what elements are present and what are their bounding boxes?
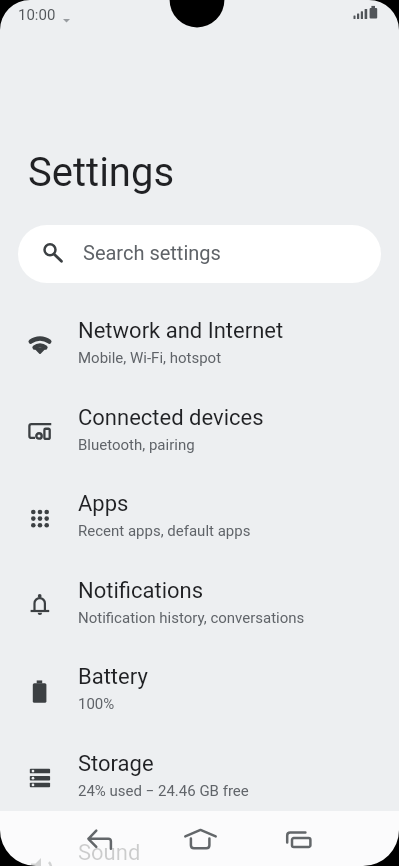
staticText: Apps xyxy=(78,491,129,517)
button[interactable]: Battery xyxy=(0,647,399,734)
button[interactable] xyxy=(76,815,124,863)
staticText: Sound xyxy=(78,840,141,866)
staticText: Battery xyxy=(78,664,148,690)
button[interactable] xyxy=(176,815,224,863)
staticText: Settings xyxy=(28,149,175,196)
button[interactable]: Network and Internet xyxy=(0,301,399,388)
staticText: Search settings xyxy=(83,241,221,264)
staticText: Network and Internet xyxy=(78,318,284,344)
staticText: 24% used − 24.46 GB free xyxy=(78,782,249,800)
staticText: Connected devices xyxy=(78,405,264,431)
staticText: Bluetooth, pairing xyxy=(78,436,195,454)
staticText: Recent apps, default apps xyxy=(78,522,251,540)
button[interactable]: Sound xyxy=(0,823,399,866)
staticText: Storage xyxy=(78,751,154,777)
staticText: Notification history, conversations xyxy=(78,609,305,627)
staticText: Mobile, Wi-Fi, hotspot xyxy=(78,349,222,367)
button[interactable]: Connected devices xyxy=(0,388,399,474)
button[interactable]: Storage xyxy=(0,734,399,820)
staticText: Notifications xyxy=(78,578,204,604)
button[interactable]: Notifications xyxy=(0,561,399,647)
staticText: 100% xyxy=(78,695,115,713)
staticText: 10:00 xyxy=(18,6,56,24)
button[interactable]: Apps xyxy=(0,474,399,561)
button[interactable] xyxy=(275,815,323,863)
button[interactable]: Search settings xyxy=(18,225,381,283)
